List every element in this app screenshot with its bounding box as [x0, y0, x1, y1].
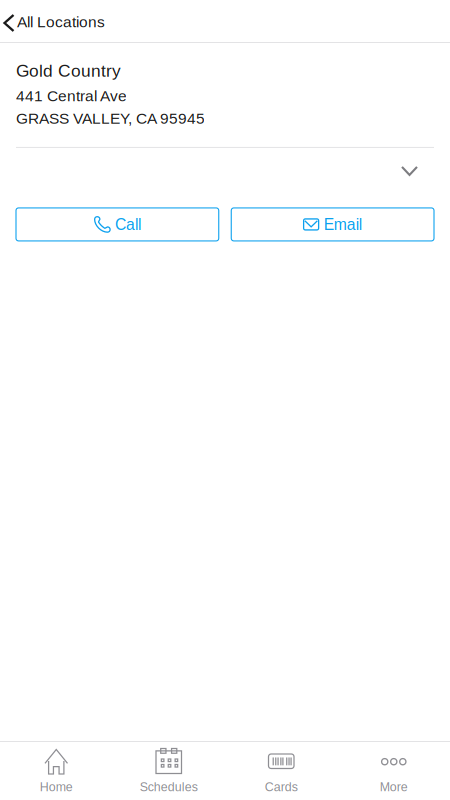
- button[interactable]: Home: [0, 742, 112, 800]
- staticText: Email: [324, 216, 362, 233]
- staticText: More: [380, 780, 408, 794]
- button[interactable]: Call: [16, 208, 219, 241]
- button[interactable]: Show more details: [388, 148, 434, 187]
- button[interactable]: Schedules: [112, 742, 225, 800]
- button[interactable]: More: [337, 742, 450, 800]
- staticText: Gold Country: [16, 61, 121, 80]
- staticText: Schedules: [140, 780, 198, 794]
- button[interactable]: Email: [231, 208, 434, 241]
- staticText: Home: [40, 780, 73, 794]
- staticText: Cards: [265, 780, 298, 794]
- staticText: All Locations: [17, 13, 105, 31]
- staticText: Call: [115, 216, 141, 233]
- button[interactable]: Cards: [225, 742, 337, 800]
- staticText: GRASS VALLEY, CA 95945: [16, 110, 205, 127]
- button[interactable]: All Locations: [0, 0, 113, 42]
- staticText: 441 Central Ave: [16, 87, 127, 105]
